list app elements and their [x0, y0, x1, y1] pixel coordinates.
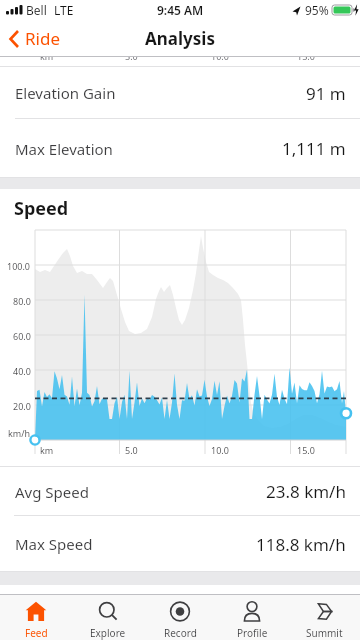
staticText: Analysis: [145, 27, 215, 50]
staticText: 91 m: [306, 82, 346, 105]
staticText: Explore: [90, 626, 126, 640]
staticText: 10.0: [211, 57, 229, 60]
button[interactable]: Avg Speed: [0, 467, 360, 516]
staticText: 10.0: [211, 444, 229, 456]
button[interactable]: Elevation Gain: [0, 67, 360, 119]
staticText: Bell: [26, 2, 47, 18]
staticText: LTE: [54, 2, 74, 18]
staticText: 1,111 m: [282, 137, 346, 160]
staticText: 60.0: [13, 330, 31, 342]
staticText: Avg Speed: [15, 482, 89, 502]
staticText: Record: [164, 626, 197, 640]
button[interactable]: Feed: [0, 595, 72, 640]
button[interactable]: Summit: [288, 595, 360, 640]
staticText: Summit: [306, 626, 343, 640]
staticText: 15.0: [297, 57, 315, 60]
staticText: 5.0: [125, 444, 138, 456]
button[interactable]: Record: [144, 595, 216, 640]
staticText: 5.0: [125, 57, 138, 60]
staticText: 95%: [305, 2, 329, 18]
button[interactable]: Ride: [8, 27, 61, 50]
button[interactable]: Max Speed: [0, 516, 360, 572]
button[interactable]: Max Elevation: [0, 119, 360, 178]
staticText: 9:45 AM: [157, 2, 204, 18]
staticText: 23.8 km/h: [266, 480, 346, 503]
staticText: 15.0: [297, 444, 315, 456]
staticText: Ride: [25, 27, 61, 50]
staticText: km: [40, 57, 54, 60]
button[interactable]: Profile: [216, 595, 288, 640]
button[interactable]: Explore: [72, 595, 144, 640]
staticText: 40.0: [13, 365, 31, 377]
staticText: Feed: [25, 626, 48, 640]
staticText: Max Elevation: [15, 139, 113, 159]
staticText: Profile: [237, 626, 268, 640]
staticText: 100.0: [7, 260, 31, 272]
staticText: 20.0: [13, 400, 31, 412]
staticText: 118.8 km/h: [256, 533, 346, 556]
staticText: Speed: [14, 196, 69, 221]
staticText: Elevation Gain: [15, 83, 116, 103]
staticText: km: [40, 444, 54, 456]
staticText: Max Speed: [15, 534, 93, 554]
staticText: km/h: [8, 427, 31, 439]
staticText: 80.0: [13, 295, 31, 307]
